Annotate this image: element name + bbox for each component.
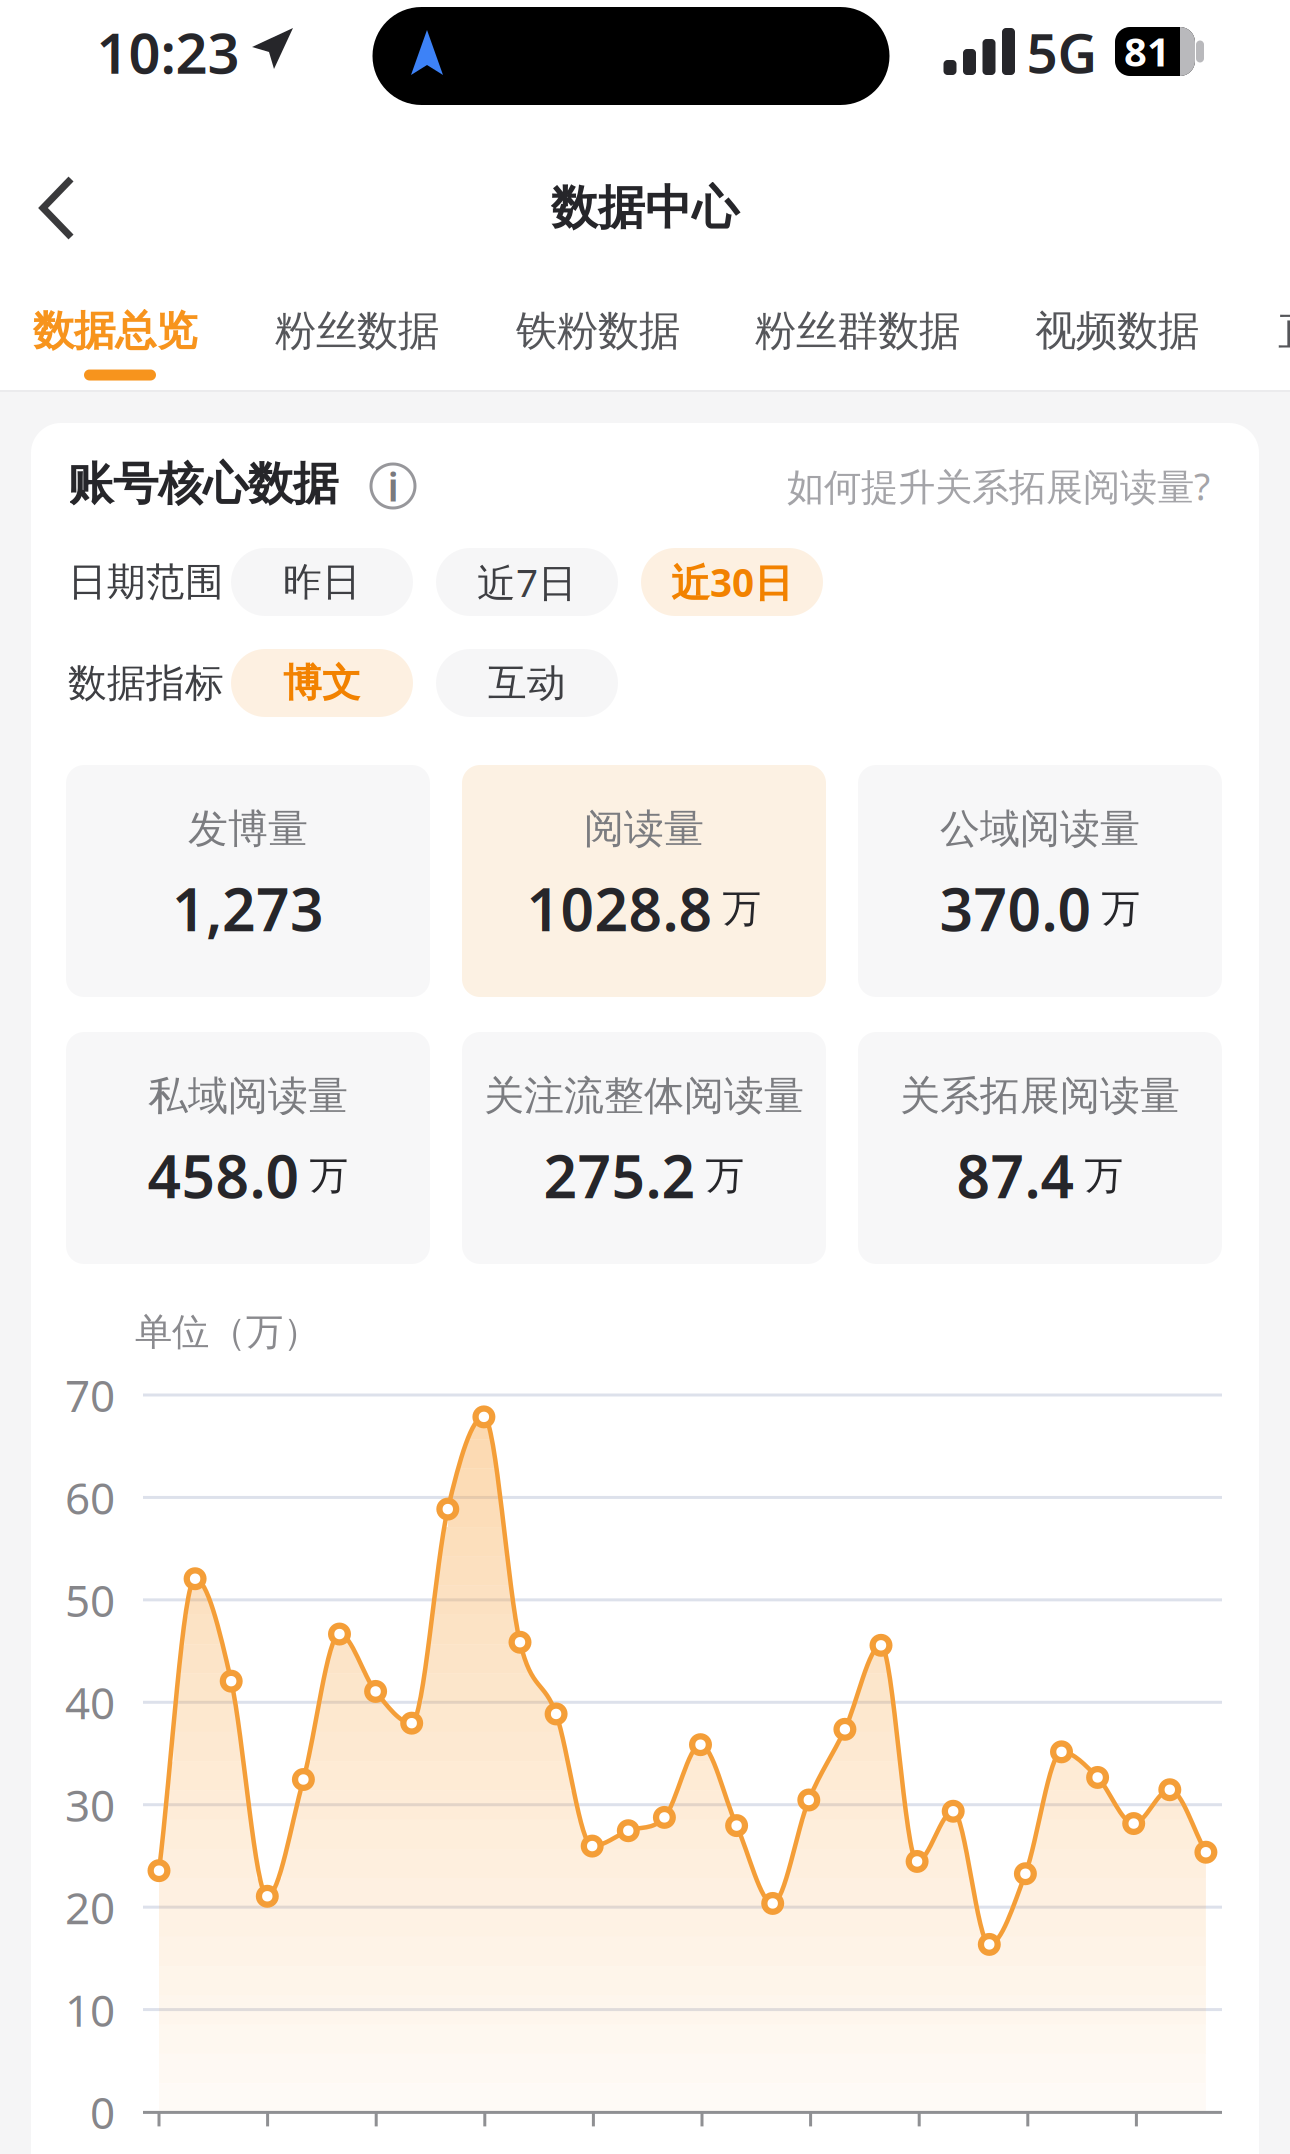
staticText: 1,273 <box>172 870 324 947</box>
button[interactable]: 昨日 <box>231 548 413 616</box>
staticText: 1028.8 <box>526 870 712 947</box>
button[interactable]: 说明 <box>371 459 415 512</box>
staticText: 万 <box>1101 885 1140 932</box>
staticText: 粉丝群数据 <box>755 306 960 356</box>
staticText: 如何提升关系拓展阅读量? <box>787 461 1210 511</box>
button[interactable]: 私域阅读量 <box>66 1032 430 1264</box>
staticText: 粉丝数据 <box>275 306 439 356</box>
staticText: 近30日 <box>671 556 793 608</box>
staticText: 370.0 <box>939 870 1091 947</box>
staticText: 近7日 <box>477 556 577 608</box>
staticText: 铁粉数据 <box>516 306 680 356</box>
button[interactable]: 发博量 <box>66 765 430 997</box>
button[interactable]: 粉丝群数据 <box>755 306 995 356</box>
button[interactable]: Back <box>38 175 78 241</box>
staticText: 万 <box>1084 1152 1123 1199</box>
staticText: 40 <box>65 1673 115 1731</box>
button[interactable]: 博文 <box>231 649 413 717</box>
staticText: 博文 <box>283 659 361 707</box>
button[interactable]: 关系拓展阅读量 <box>858 1032 1222 1264</box>
button[interactable]: 数据总览 <box>33 306 273 356</box>
staticText: 直播数据 <box>1278 306 1290 356</box>
staticText: 数据指标 <box>68 659 224 707</box>
staticText: 10:23 <box>96 15 239 89</box>
button[interactable]: 阅读量 <box>462 765 826 997</box>
staticText: 公域阅读量 <box>940 804 1140 854</box>
staticText: 日期范围 <box>68 558 224 606</box>
staticText: 数据中心 <box>551 179 739 237</box>
staticText: 阅读量 <box>584 804 704 854</box>
staticText: 关注流整体阅读量 <box>484 1071 804 1121</box>
staticText: 60 <box>65 1468 115 1527</box>
staticText: 70 <box>65 1366 115 1424</box>
staticText: 50 <box>65 1571 115 1629</box>
button[interactable]: 如何提升关系拓展阅读量? <box>650 461 1210 511</box>
button[interactable]: 视频数据 <box>1035 306 1275 356</box>
staticText: 81 <box>1124 24 1170 77</box>
staticText: 关系拓展阅读量 <box>900 1071 1180 1121</box>
button[interactable]: 粉丝数据 <box>275 306 515 356</box>
button[interactable]: 铁粉数据 <box>516 306 756 356</box>
staticText: 20 <box>65 1878 115 1936</box>
staticText: 数据总览 <box>33 306 197 356</box>
staticText: 30 <box>65 1775 115 1834</box>
staticText: 10 <box>65 1980 115 2039</box>
button[interactable]: 直播数据 <box>1278 306 1290 356</box>
staticText: 互动 <box>488 659 566 707</box>
staticText: 单位（万） <box>135 1309 320 1355</box>
staticText: 0 <box>90 2083 115 2141</box>
button[interactable]: 关注流整体阅读量 <box>462 1032 826 1264</box>
button[interactable]: 公域阅读量 <box>858 765 1222 997</box>
staticText: 5G <box>1026 16 1097 88</box>
staticText: 万 <box>705 1152 744 1199</box>
button[interactable]: 近30日 <box>641 548 823 616</box>
staticText: 发博量 <box>188 804 308 854</box>
staticText: 458.0 <box>147 1137 299 1214</box>
staticText: 账号核心数据 <box>68 456 338 512</box>
staticText: 万 <box>309 1152 348 1199</box>
button[interactable]: 互动 <box>436 649 618 717</box>
staticText: 视频数据 <box>1035 306 1199 356</box>
staticText: i <box>387 459 398 512</box>
staticText: 万 <box>722 885 761 932</box>
staticText: 275.2 <box>543 1137 695 1214</box>
staticText: 昨日 <box>283 558 361 606</box>
staticText: 私域阅读量 <box>148 1071 348 1121</box>
staticText: 87.4 <box>956 1137 1074 1214</box>
button[interactable]: 近7日 <box>436 548 618 616</box>
